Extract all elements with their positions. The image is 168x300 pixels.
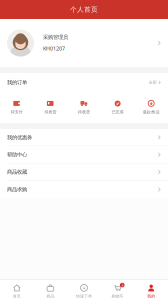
button[interactable]: 我的: [134, 283, 168, 300]
staticText: 帮助中心: [7, 151, 27, 158]
staticText: 首页: [13, 294, 21, 299]
button[interactable]: 帮助中心: [0, 146, 168, 164]
staticText: 待发货: [44, 109, 56, 114]
staticText: KH01207: [43, 45, 65, 52]
button[interactable]: 我的优惠券: [0, 129, 168, 146]
staticText: 待收货: [78, 109, 90, 114]
staticText: 3: [121, 282, 123, 288]
button[interactable]: 待支付: [0, 92, 34, 122]
staticText: 购物车: [112, 294, 124, 299]
staticText: 快速下单: [76, 294, 92, 299]
button[interactable]: 首页: [0, 283, 34, 300]
staticText: 商品: [46, 294, 54, 299]
button[interactable]: 快速下单: [67, 283, 101, 300]
button[interactable]: 商品求购: [0, 181, 168, 198]
staticText: 采购管理员: [43, 34, 68, 40]
button[interactable]: 待发货: [34, 92, 67, 122]
button[interactable]: 采购管理员: [0, 19, 168, 67]
button[interactable]: 待收货: [67, 92, 101, 122]
button[interactable]: 商品收藏: [0, 164, 168, 181]
button[interactable]: 全部: [149, 80, 161, 85]
button[interactable]: 退款/售后: [134, 92, 168, 122]
staticText: 我的优惠券: [7, 134, 32, 141]
button[interactable]: 3: [101, 283, 134, 300]
staticText: 待支付: [11, 109, 23, 114]
staticText: 已完成: [112, 109, 124, 114]
button[interactable]: 已完成: [101, 92, 134, 122]
staticText: 个人首页: [70, 5, 98, 14]
staticText: 我的: [147, 294, 155, 299]
staticText: 退款/售后: [143, 109, 160, 115]
staticText: 全部: [149, 80, 157, 85]
staticText: 商品收藏: [7, 169, 27, 175]
staticText: 商品求购: [7, 186, 27, 193]
staticText: 我的订单: [7, 79, 27, 86]
button[interactable]: 商品: [34, 283, 67, 300]
